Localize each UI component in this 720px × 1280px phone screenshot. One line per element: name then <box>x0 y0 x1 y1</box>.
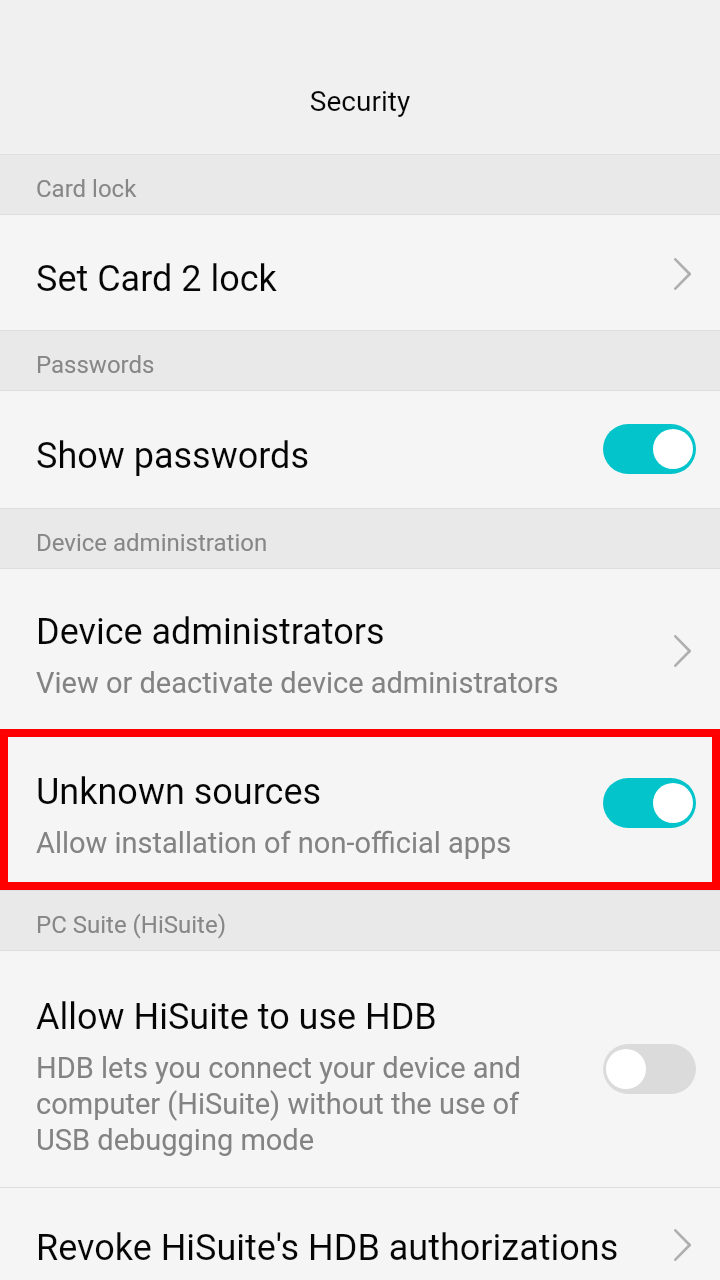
staticText: View or deactivate device administrators <box>36 666 559 700</box>
staticText: Set Card 2 lock <box>36 258 277 300</box>
staticText: Security <box>0 85 720 118</box>
staticText: Card lock <box>36 175 137 203</box>
button[interactable]: Set Card 2 lock <box>0 215 720 330</box>
button[interactable]: Show passwords toggle, on <box>603 424 696 474</box>
staticText: Device administration <box>36 529 268 557</box>
staticText: Passwords <box>36 351 155 379</box>
staticText: Show passwords <box>36 435 310 477</box>
button[interactable]: Allow HiSuite to use HDB <box>0 951 720 1187</box>
staticText: Allow installation of non-official apps <box>36 826 512 860</box>
button[interactable]: Unknown sources toggle, on <box>603 778 696 828</box>
staticText: PC Suite (HiSuite) <box>36 911 226 939</box>
button[interactable]: Revoke HiSuite's HDB authorizations <box>0 1188 720 1280</box>
staticText: HDB lets you connect your device and com… <box>36 1051 576 1157</box>
staticText: Revoke HiSuite's HDB authorizations <box>36 1227 619 1269</box>
button[interactable]: Show passwords <box>0 391 720 508</box>
staticText: Device administrators <box>36 611 385 653</box>
button[interactable]: Unknown sources <box>0 729 720 890</box>
button[interactable]: Allow HiSuite to use HDB toggle, off <box>603 1044 696 1094</box>
staticText: Allow HiSuite to use HDB <box>36 996 437 1038</box>
button[interactable]: Device administrators <box>0 569 720 729</box>
staticText: Unknown sources <box>36 771 322 813</box>
